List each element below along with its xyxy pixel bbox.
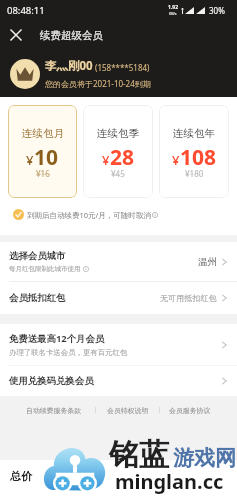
staticText: 到期后自动续费10元/月，可随时取消: [27, 210, 151, 220]
staticText: 免费送最高12个月会员: [9, 332, 105, 345]
button[interactable]: 自动续费服务条款: [26, 406, 82, 415]
button[interactable]: 会员服务协议: [169, 406, 211, 415]
button[interactable]: 免费送最高12个月会员: [0, 324, 237, 365]
staticText: 李灬刚00: [45, 58, 93, 74]
staticText: ¥45: [111, 168, 125, 179]
staticText: (158****5184): [95, 62, 150, 73]
staticText: 选择会员城市: [9, 250, 66, 262]
staticText: ¥180: [185, 168, 204, 179]
button[interactable]: 连续包年: [159, 105, 229, 198]
staticText: 10: [34, 143, 59, 172]
button[interactable]: 会员特权说明: [107, 406, 149, 415]
staticText: 108: [180, 143, 217, 172]
staticText: 铭蓝: [109, 436, 169, 474]
staticText: ¥16: [36, 168, 50, 179]
staticText: 无可用抵扣红包: [160, 293, 217, 303]
staticText: ¥: [102, 151, 110, 169]
staticText: 办理了联名卡送会员，更有百元红包: [9, 348, 128, 357]
staticText: 游戏网: [173, 445, 236, 471]
staticText: 使用兑换码兑换会员: [9, 375, 94, 387]
staticText: 会员抵扣红包: [9, 292, 66, 304]
staticText: 28: [110, 143, 135, 172]
staticText: ¥: [26, 151, 34, 169]
staticText: 您的会员将于2021-10-24到期: [45, 78, 151, 89]
staticText: 每月红包限制此城市使用: [9, 265, 81, 273]
staticText: 续费超级会员: [40, 29, 103, 42]
button[interactable]: 连续包季: [83, 105, 153, 198]
staticText: 连续包月: [22, 127, 64, 140]
staticText: 温州: [198, 256, 217, 268]
button[interactable]: 选择会员城市: [0, 242, 237, 281]
staticText: KB/s: [169, 11, 177, 16]
button[interactable]: 使用兑换码兑换会员: [0, 366, 237, 396]
button[interactable]: Close: [0, 22, 32, 48]
staticText: 连续包年: [173, 127, 215, 140]
button[interactable]: 会员抵扣红包: [0, 282, 237, 314]
staticText: 08:48:11: [7, 4, 45, 17]
staticText: 总价: [10, 469, 32, 483]
staticText: minglan.cc: [115, 468, 224, 495]
button[interactable]: 连续包月: [8, 105, 77, 198]
staticText: 1.92: [168, 4, 178, 11]
staticText: 30%: [209, 5, 225, 16]
staticText: ¥: [172, 151, 180, 169]
staticText: 连续包季: [97, 127, 139, 140]
